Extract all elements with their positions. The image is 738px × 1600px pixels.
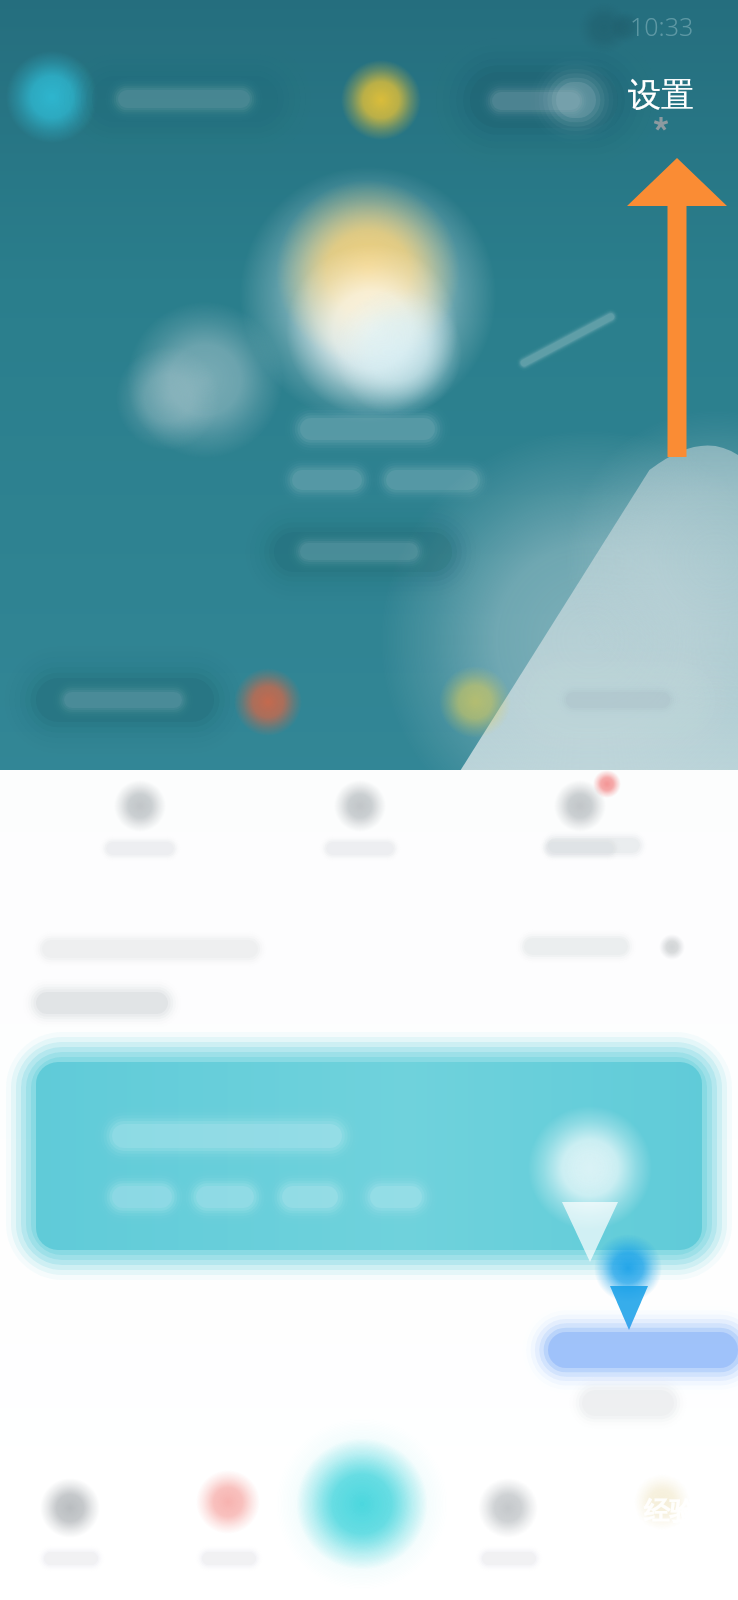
button[interactable]: Add	[296, 1438, 428, 1570]
staticText: 设置	[628, 74, 694, 116]
button[interactable]: 设置	[610, 62, 728, 124]
button[interactable]: Discover	[178, 1462, 282, 1582]
button[interactable]: Promo card	[36, 1062, 702, 1250]
staticText: Bai du 经验	[556, 1492, 696, 1528]
staticText: 10:33	[630, 9, 694, 43]
button[interactable]: Home	[20, 1462, 124, 1582]
button[interactable]: Messages	[456, 1462, 560, 1582]
button[interactable]: Profile	[610, 1462, 714, 1582]
